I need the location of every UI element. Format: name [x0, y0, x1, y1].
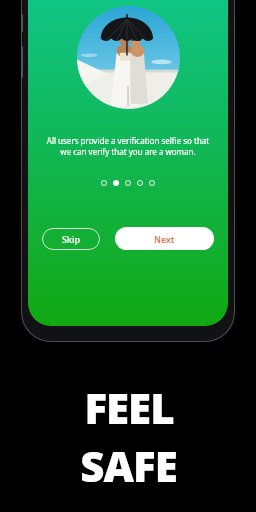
- staticText: FEEL: [84, 379, 174, 436]
- button[interactable]: Next: [115, 227, 214, 250]
- staticText: All users provide a verification selfie …: [38, 135, 218, 157]
- staticText: Next: [154, 233, 175, 245]
- staticText: Skip: [62, 233, 80, 245]
- staticText: SAFE: [80, 437, 177, 494]
- button[interactable]: Skip: [42, 228, 100, 250]
